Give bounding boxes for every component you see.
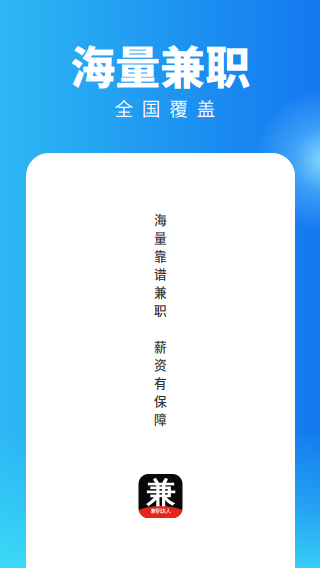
staticText: 保 [154,391,167,410]
staticText: 全国覆盖 [115,94,215,121]
staticText: 海量兼职 [70,32,250,98]
staticText: 障 [154,410,167,428]
staticText: 海 [154,210,167,228]
staticText: 靠 [154,246,167,264]
staticText: 兼 [146,475,175,511]
staticText: 兼 [154,282,167,301]
staticText: 资 [154,355,167,373]
staticText: 谱 [154,264,167,283]
staticText: 职 [154,301,167,319]
staticText: 兼职达人 [150,508,170,514]
staticText: 薪 [154,337,167,355]
staticText: 有 [154,373,167,392]
staticText: 量 [154,228,167,246]
